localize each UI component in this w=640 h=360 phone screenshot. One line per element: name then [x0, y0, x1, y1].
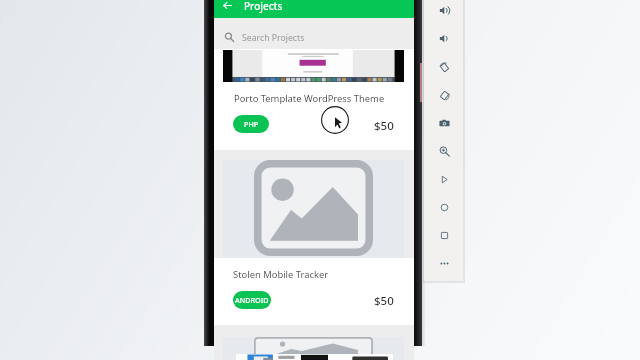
- button[interactable]: Take screenshot: [432, 111, 456, 135]
- button[interactable]: More: [432, 251, 456, 275]
- button[interactable]: Home: [432, 195, 456, 219]
- staticText: PHP: [244, 119, 259, 129]
- button[interactable]: Stolen Mobile Tracker: [214, 160, 414, 325]
- staticText: Projects: [244, 0, 283, 13]
- button[interactable]: Back: [432, 167, 456, 191]
- staticText: Search Projects: [242, 32, 305, 44]
- button[interactable]: Porto Template WordPress Theme: [214, 49, 414, 150]
- staticText: Stolen Mobile Tracker: [233, 268, 329, 281]
- button[interactable]: Navigate up: [218, 0, 237, 15]
- button[interactable]: ANDROID: [233, 291, 271, 309]
- staticText: $50: [374, 118, 394, 134]
- button[interactable]: Search Projects: [214, 18, 414, 49]
- button[interactable]: Advertisement: [236, 354, 393, 360]
- staticText: Porto Template WordPress Theme: [234, 92, 385, 105]
- staticText: ANDROID: [235, 295, 269, 305]
- button[interactable]: Zoom: [432, 139, 456, 163]
- button[interactable]: Rotate left: [432, 55, 456, 79]
- button[interactable]: Volume up: [432, 0, 456, 22]
- button[interactable]: [214, 337, 414, 360]
- staticText: $50: [374, 293, 394, 309]
- button[interactable]: Volume down: [432, 26, 456, 50]
- button[interactable]: Overview: [432, 223, 456, 247]
- button[interactable]: PHP: [233, 115, 269, 133]
- button[interactable]: Rotate right: [432, 83, 456, 107]
